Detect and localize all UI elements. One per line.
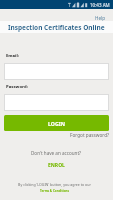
button[interactable]: Help [91, 11, 113, 21]
staticText: Don't have an account? [31, 150, 82, 156]
staticText: Email: [6, 53, 20, 59]
other: Status icons [68, 2, 88, 8]
button[interactable]: Forgot password? [68, 131, 113, 139]
staticText: Password: [6, 84, 28, 90]
staticText: Help [95, 15, 106, 21]
staticText: Forgot password? [70, 132, 110, 138]
staticText: 10:43 AM [90, 2, 110, 8]
staticText: LOGIN [48, 120, 65, 127]
button[interactable]: ENROL [45, 161, 68, 170]
button[interactable]: Email input [4, 63, 109, 80]
staticText: Terms & Conditions [40, 189, 69, 193]
button[interactable]: LOGIN [4, 115, 109, 131]
button[interactable]: Password input [4, 94, 109, 111]
staticText: ENROL [48, 162, 65, 169]
button[interactable]: Terms & Conditions [38, 189, 71, 193]
staticText: Inspection Certificates Online [8, 23, 105, 32]
staticText: By clicking 'LOGIN' button, you agree to… [18, 182, 91, 187]
